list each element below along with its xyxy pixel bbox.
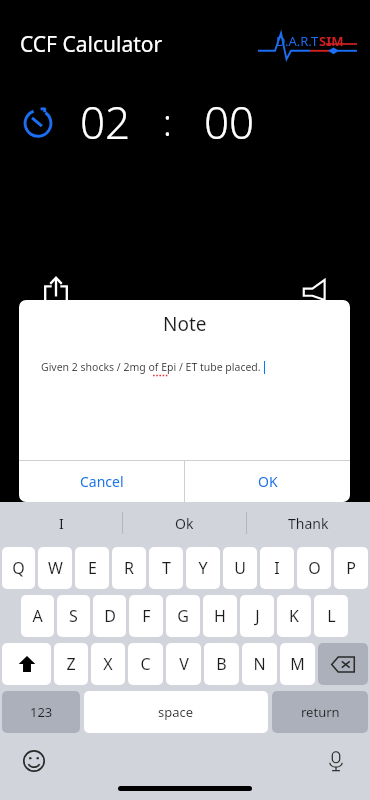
staticText: O — [308, 557, 321, 579]
staticText: I — [59, 514, 64, 533]
staticText: K — [289, 605, 299, 627]
staticText: return — [301, 703, 340, 721]
staticText: V — [179, 653, 189, 675]
staticText: U — [234, 557, 246, 579]
staticText: Note — [163, 311, 207, 337]
button[interactable]: R — [112, 547, 146, 589]
button[interactable]: T — [149, 547, 183, 589]
button[interactable]: Backspace — [318, 643, 368, 685]
staticText: L — [327, 605, 336, 627]
staticText: I — [274, 557, 280, 579]
button[interactable]: S — [57, 595, 90, 637]
staticText: S — [69, 605, 78, 627]
button[interactable]: I — [260, 547, 294, 589]
staticText: 00 — [204, 92, 255, 152]
button[interactable]: D — [93, 595, 126, 637]
staticText: Given 2 shocks / 2mg of Epi / ET tube pl… — [41, 360, 261, 374]
staticText: 02 — [80, 92, 131, 152]
staticText: P — [346, 557, 356, 579]
button[interactable]: W — [38, 547, 72, 589]
staticText: J — [255, 605, 260, 627]
button[interactable]: Timer — [18, 102, 58, 142]
staticText: M — [290, 653, 305, 675]
button[interactable]: X — [91, 643, 125, 685]
staticText: : — [163, 98, 172, 147]
button[interactable]: M — [280, 643, 315, 685]
staticText: W — [48, 557, 63, 579]
button[interactable]: OK — [185, 461, 350, 502]
staticText: T — [162, 557, 171, 579]
button[interactable]: Z — [54, 643, 88, 685]
button[interactable]: Ok — [123, 502, 246, 544]
button[interactable]: Q — [2, 547, 35, 589]
staticText: Y — [198, 557, 208, 579]
staticText: C — [140, 653, 151, 675]
button[interactable]: Thank — [247, 502, 370, 544]
staticText: A — [32, 605, 43, 627]
button[interactable]: Shift — [2, 643, 51, 685]
staticText: H — [214, 605, 226, 627]
button[interactable]: return — [272, 691, 368, 733]
button[interactable]: L — [314, 595, 348, 637]
staticText: D — [104, 605, 116, 627]
staticText: D.A.R.T — [276, 32, 319, 50]
staticText: space — [158, 703, 194, 721]
button[interactable]: J — [240, 595, 274, 637]
staticText: CCF Calculator — [20, 30, 163, 59]
button[interactable]: 123 — [2, 691, 80, 733]
button[interactable]: Share — [38, 272, 74, 308]
button[interactable]: N — [242, 643, 277, 685]
button[interactable]: A — [21, 595, 54, 637]
staticText: Z — [66, 653, 76, 675]
staticText: R — [124, 557, 134, 579]
button[interactable]: Y — [186, 547, 220, 589]
staticText: Cancel — [80, 472, 124, 491]
button[interactable]: Emoji — [20, 747, 48, 775]
staticText: Thank — [288, 514, 329, 533]
staticText: 123 — [30, 703, 53, 721]
staticText: Q — [12, 557, 25, 579]
staticText: X — [103, 653, 113, 675]
button[interactable]: H — [203, 595, 237, 637]
button[interactable]: G — [166, 595, 200, 637]
button[interactable]: Sound — [298, 272, 334, 308]
button[interactable]: F — [129, 595, 163, 637]
button[interactable]: V — [166, 643, 201, 685]
staticText: N — [253, 653, 266, 675]
staticText: E — [88, 557, 97, 579]
staticText: OK — [258, 472, 278, 491]
button[interactable]: B — [204, 643, 239, 685]
button[interactable]: U — [223, 547, 257, 589]
button[interactable]: K — [277, 595, 311, 637]
button[interactable]: E — [75, 547, 109, 589]
staticText: SIM — [319, 32, 344, 50]
button[interactable]: Dictation — [322, 747, 350, 775]
button[interactable]: Cancel — [19, 461, 184, 502]
staticText: F — [142, 605, 151, 627]
button[interactable]: P — [334, 547, 368, 589]
staticText: B — [216, 653, 227, 675]
button[interactable]: I — [0, 502, 122, 544]
staticText: Ok — [175, 514, 194, 533]
button[interactable]: O — [297, 547, 331, 589]
staticText: G — [177, 605, 189, 627]
button[interactable]: C — [128, 643, 163, 685]
button[interactable]: space — [84, 691, 268, 733]
